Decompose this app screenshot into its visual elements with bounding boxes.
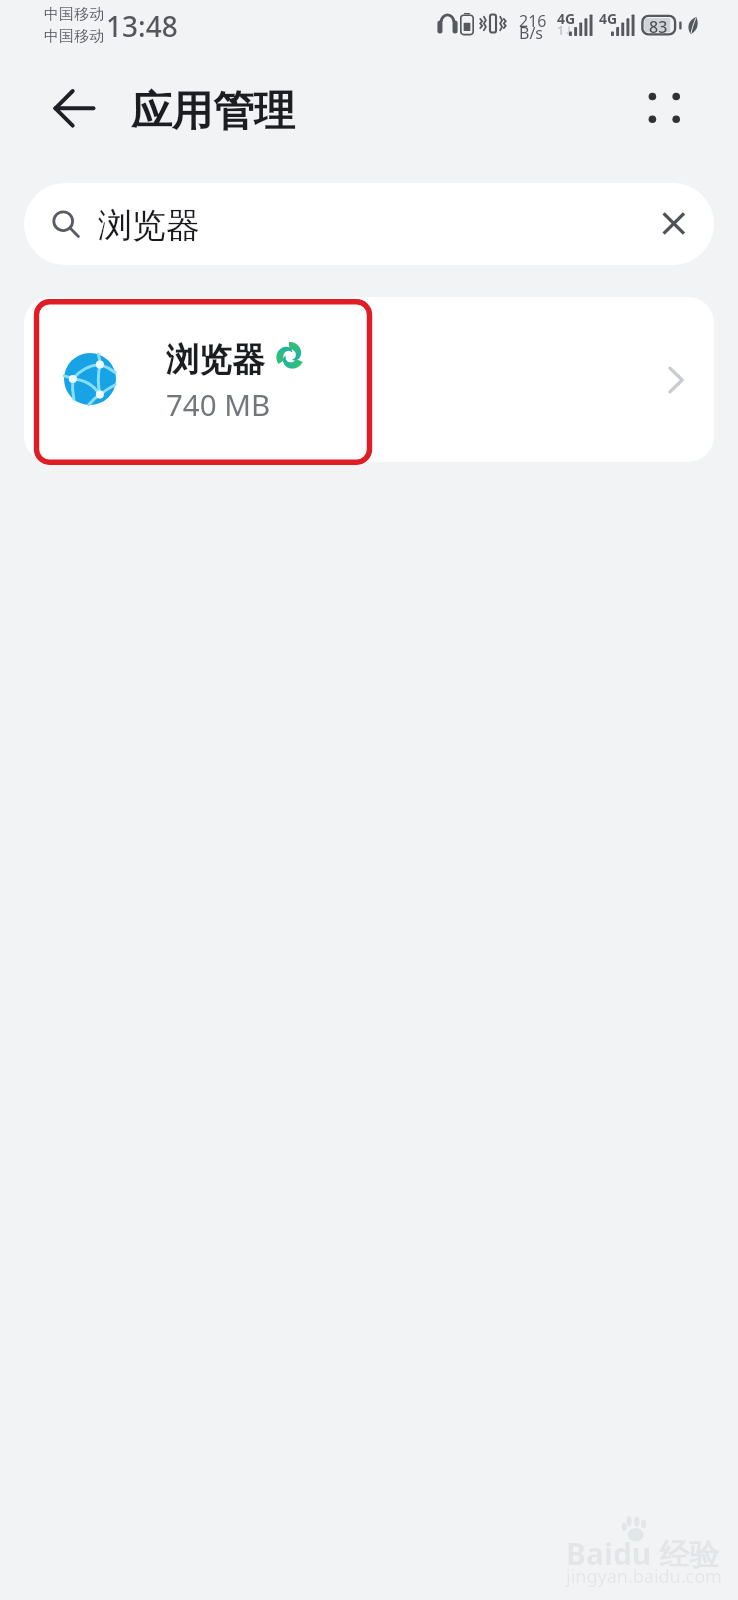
staticText: 中国移动 (44, 5, 104, 24)
staticText: 应用管理 (131, 86, 295, 138)
button[interactable]: Clear search (651, 202, 695, 246)
staticText: 4G (557, 9, 576, 28)
button[interactable]: 浏览器 (24, 297, 714, 462)
staticText: 4G (599, 9, 618, 28)
button[interactable]: Back (36, 78, 108, 138)
staticText: 中国移动 (44, 27, 104, 46)
staticText: 浏览器 (166, 339, 265, 381)
staticText: jingyan.baidu.com (566, 1564, 722, 1589)
staticText: 83 (649, 16, 668, 36)
staticText: Baidu 经验 (566, 1533, 720, 1574)
staticText: 740 MB (166, 384, 271, 424)
button[interactable]: 浏览器 (24, 183, 714, 265)
staticText: 13:48 (106, 7, 178, 45)
staticText: 216 B/s (519, 10, 547, 44)
staticText: 1↓ (557, 22, 574, 38)
button[interactable]: More options (634, 78, 694, 138)
staticText: 浏览器 (98, 204, 200, 247)
